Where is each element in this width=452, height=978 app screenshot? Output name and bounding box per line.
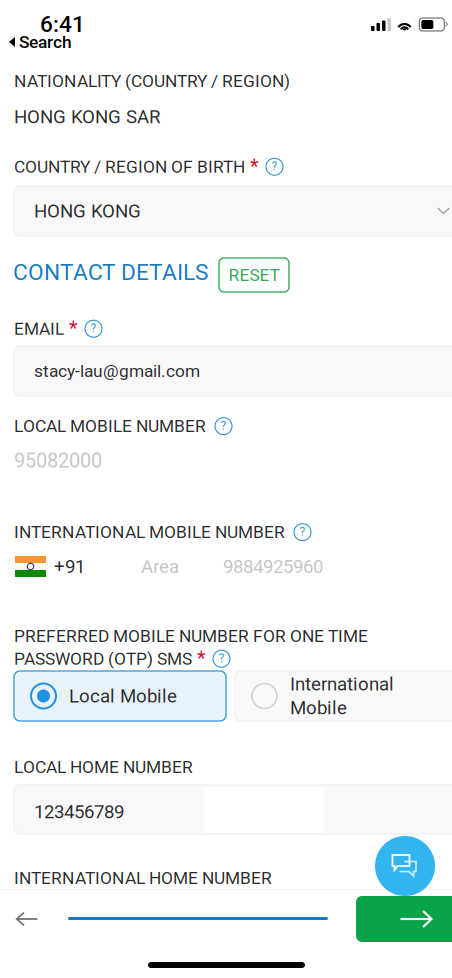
button[interactable]: Search <box>0 32 72 52</box>
staticText: * <box>64 317 78 340</box>
button[interactable]: International <box>235 671 452 721</box>
staticText: RESET <box>228 265 279 285</box>
button[interactable]: Local Mobile <box>14 671 226 721</box>
staticText: CONTACT DETAILS <box>13 259 208 286</box>
staticText: 6:41 <box>40 11 85 38</box>
staticText: LOCAL MOBILE NUMBER <box>14 416 206 436</box>
button[interactable]: Next <box>356 896 452 942</box>
staticText: * <box>192 647 206 670</box>
button[interactable]: Chat support <box>375 836 435 896</box>
button[interactable]: stacy-lau@gmail.com <box>14 346 452 396</box>
staticText: ? <box>299 525 305 539</box>
staticText: ? <box>218 651 224 665</box>
staticText: stacy-lau@gmail.com <box>34 361 200 381</box>
staticText: PREFERRED MOBILE NUMBER FOR ONE TIME <box>14 626 368 646</box>
staticText: ? <box>271 159 277 173</box>
staticText: Local Mobile <box>69 685 177 707</box>
staticText: LOCAL HOME NUMBER <box>14 757 193 777</box>
staticText: Search <box>19 32 72 52</box>
button[interactable]: HONG KONG <box>14 186 452 236</box>
staticText: PASSWORD (OTP) SMS <box>14 649 192 669</box>
staticText: * <box>245 155 259 178</box>
staticText: NATIONALITY (COUNTRY / REGION) <box>14 71 290 91</box>
staticText: ? <box>90 321 96 335</box>
button[interactable]: Back <box>5 902 49 936</box>
staticText: 95082000 <box>14 449 102 472</box>
button[interactable]: RESET <box>219 258 289 292</box>
staticText: Mobile <box>290 697 347 719</box>
staticText: HONG KONG <box>34 200 141 222</box>
staticText: HONG KONG SAR <box>14 106 161 128</box>
staticText: +91 <box>54 556 85 577</box>
staticText: 9884925960 <box>223 556 323 577</box>
staticText: INTERNATIONAL HOME NUMBER <box>14 868 272 888</box>
staticText: INTERNATIONAL MOBILE NUMBER <box>14 522 285 542</box>
staticText: International <box>290 673 394 695</box>
staticText: Area <box>141 556 179 577</box>
staticText: ? <box>220 419 226 433</box>
staticText: COUNTRY / REGION OF BIRTH <box>14 157 245 177</box>
staticText: EMAIL <box>14 319 64 339</box>
staticText: 123456789 <box>34 801 124 823</box>
